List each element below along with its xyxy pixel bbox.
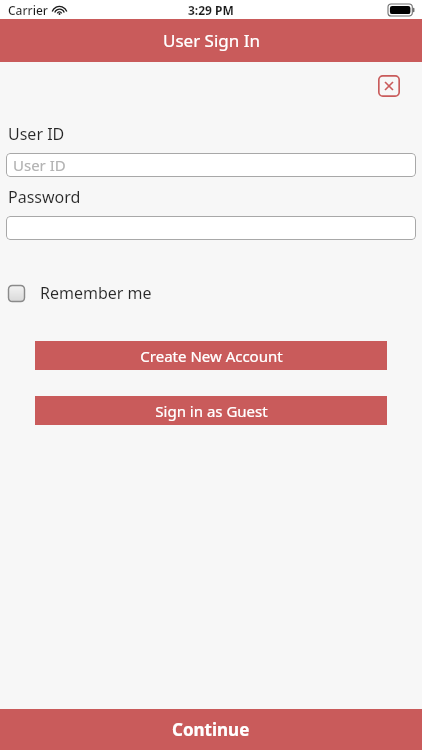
button[interactable] <box>6 216 416 240</box>
button[interactable]: User ID <box>6 153 416 177</box>
staticText: Sign in as Guest <box>155 401 268 421</box>
staticText: Remember me <box>40 282 152 304</box>
button[interactable]: Create New Account <box>35 341 387 370</box>
staticText: Continue <box>172 718 250 741</box>
staticText: User ID <box>13 155 66 175</box>
button[interactable]: Remember me <box>6 278 154 308</box>
staticText: User ID <box>8 123 65 145</box>
staticText: Create New Account <box>140 346 283 366</box>
staticText: Carrier <box>8 2 48 18</box>
staticText: 3:29 PM <box>188 2 234 18</box>
staticText: Password <box>8 186 81 208</box>
staticText: User Sign In <box>163 29 260 52</box>
button[interactable]: Sign in as Guest <box>35 396 387 425</box>
button[interactable]: Continue <box>0 709 422 750</box>
button[interactable]: Close <box>378 75 400 97</box>
